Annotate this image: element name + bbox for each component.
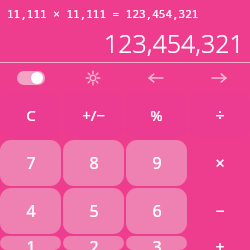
button[interactable]: Toggle [0, 63, 62, 92]
button[interactable]: 6 [126, 188, 187, 234]
staticText: 8 [89, 152, 99, 174]
staticText: 6 [152, 200, 162, 222]
staticText: 4 [26, 200, 36, 222]
button[interactable]: 8 [63, 140, 124, 186]
staticText: 123,454,321 [104, 26, 244, 60]
button[interactable]: 5 [63, 188, 124, 234]
staticText: 7 [26, 152, 36, 174]
button[interactable]: 2 [63, 236, 124, 250]
button[interactable]: + [189, 236, 250, 250]
button[interactable]: 4 [0, 188, 61, 234]
staticText: % [150, 105, 163, 125]
staticText: ÷ [215, 104, 225, 126]
button[interactable]: +/− [63, 92, 124, 138]
staticText: +/− [82, 105, 105, 125]
button[interactable]: ÷ [189, 92, 250, 138]
staticText: 3 [152, 236, 162, 250]
staticText: C [26, 105, 36, 125]
button[interactable]: Forward [187, 63, 250, 92]
button[interactable]: × [189, 140, 250, 186]
staticText: 11,111 × 11,111 = 123,454,321 [7, 6, 199, 21]
button[interactable]: Back [124, 63, 187, 92]
staticText: 5 [89, 200, 99, 222]
staticText: 2 [89, 236, 99, 250]
button[interactable]: % [126, 92, 187, 138]
staticText: 9 [152, 152, 162, 174]
button[interactable]: C [0, 92, 61, 138]
button[interactable]: 7 [0, 140, 61, 186]
staticText: × [215, 152, 225, 174]
button[interactable]: 9 [126, 140, 187, 186]
button[interactable]: − [189, 188, 250, 234]
staticText: 1 [26, 236, 36, 250]
button[interactable]: 1 [0, 236, 61, 250]
staticText: − [215, 200, 225, 222]
button[interactable]: Brightness [62, 63, 124, 92]
staticText: + [215, 236, 225, 250]
button[interactable]: 3 [126, 236, 187, 250]
